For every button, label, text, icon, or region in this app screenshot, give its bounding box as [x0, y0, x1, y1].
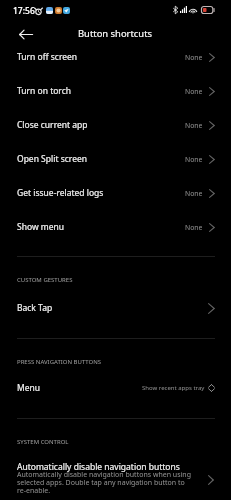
staticText: Get issue-related logs: [17, 187, 104, 199]
staticText: 17:56: [13, 5, 35, 17]
button[interactable]: Turn on torch: [0, 74, 231, 108]
staticText: None: [185, 223, 203, 232]
button[interactable]: Menu: [0, 375, 231, 401]
staticText: Menu: [17, 382, 41, 394]
staticText: Turn on torch: [17, 85, 72, 97]
staticText: Show menu: [17, 221, 65, 233]
staticText: Open Split screen: [17, 153, 88, 165]
button[interactable]: Close current app: [0, 108, 231, 142]
staticText: None: [185, 189, 203, 198]
staticText: None: [185, 87, 203, 96]
staticText: PRESS NAVIGATION BUTTONS: [17, 358, 102, 366]
staticText: Automatically disable navigation buttons…: [17, 470, 193, 495]
button[interactable]: Open Split screen: [0, 142, 231, 176]
staticText: None: [185, 53, 203, 62]
button[interactable]: Show menu: [0, 210, 231, 244]
button[interactable]: Turn off screen: [0, 40, 231, 74]
button[interactable]: Automatically disable navigation buttons: [0, 455, 231, 499]
staticText: Button shortcuts: [78, 27, 153, 40]
button[interactable]: Back Tap: [0, 295, 231, 321]
staticText: Show recent apps tray: [142, 384, 205, 392]
staticText: SYSTEM CONTROL: [17, 438, 69, 446]
staticText: Back Tap: [17, 302, 53, 314]
staticText: Turn off screen: [17, 51, 78, 63]
staticText: None: [185, 121, 203, 130]
staticText: Automatically disable navigation buttons: [17, 461, 180, 473]
staticText: None: [185, 155, 203, 164]
staticText: CUSTOM GESTURES: [17, 276, 73, 284]
button[interactable]: Get issue-related logs: [0, 176, 231, 210]
button[interactable]: Back: [14, 23, 37, 46]
staticText: Close current app: [17, 119, 88, 131]
